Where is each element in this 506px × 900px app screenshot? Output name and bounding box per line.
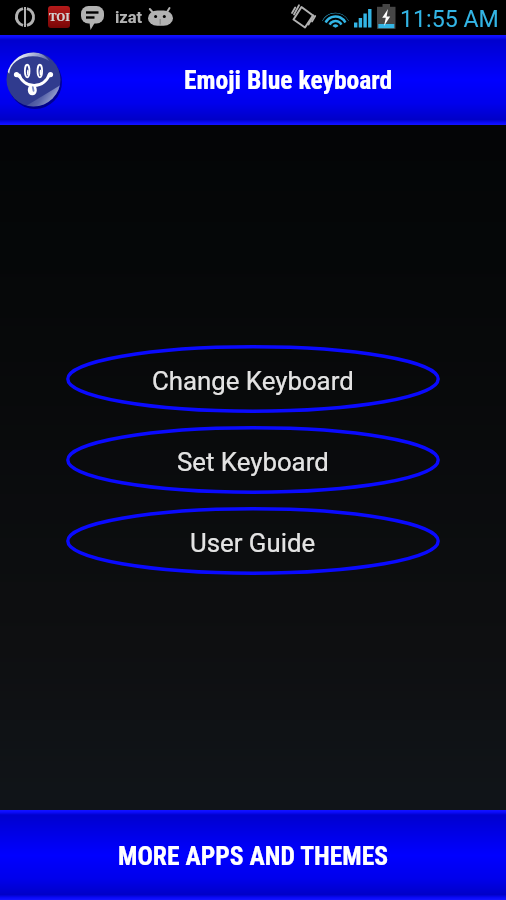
staticText: MORE APPS AND THEMES	[118, 841, 389, 871]
staticText: 11:55 AM	[400, 5, 499, 32]
staticText: TOI	[49, 9, 70, 25]
staticText: User Guide	[190, 528, 316, 558]
staticText: Emoji Blue keyboard	[184, 65, 393, 95]
other: App icon	[5, 51, 62, 108]
staticText: Set Keyboard	[177, 447, 329, 477]
button[interactable]: Set Keyboard	[66, 426, 440, 494]
button[interactable]: User Guide	[66, 507, 440, 575]
staticText: Change Keyboard	[152, 366, 354, 396]
button[interactable]: MORE APPS AND THEMES	[0, 810, 506, 900]
button[interactable]: Change Keyboard	[66, 345, 440, 413]
staticText: izat	[115, 8, 143, 27]
